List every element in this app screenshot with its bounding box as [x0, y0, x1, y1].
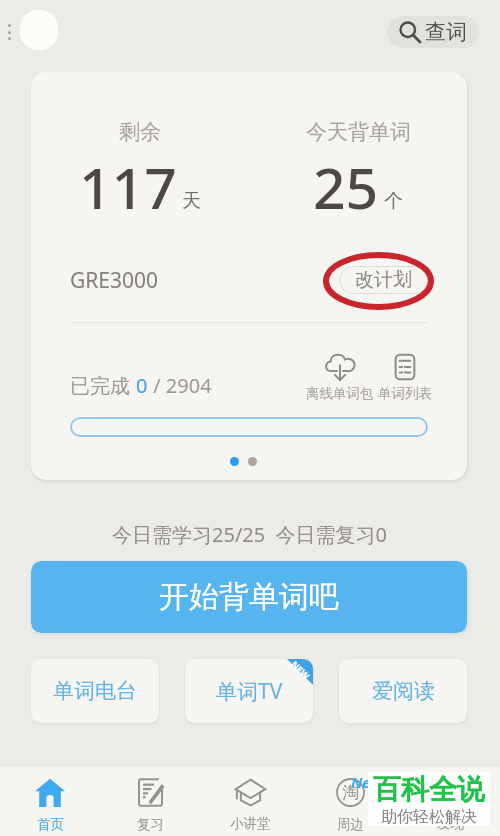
button[interactable]: 单词列表 — [371, 353, 439, 402]
button[interactable]: 单词TV — [185, 659, 313, 723]
button[interactable]: 离线单词包 — [306, 353, 374, 402]
button[interactable]: 小讲堂 — [200, 766, 300, 836]
staticText: / 2904 — [148, 372, 212, 399]
staticText: 已完成 — [70, 372, 136, 399]
staticText: 今日需学习25/25 今日需复习0 — [112, 521, 388, 548]
staticText: 助你轻松解决 — [381, 807, 477, 826]
staticText: 改计划 — [355, 268, 412, 292]
button[interactable]: 改计划 — [339, 266, 428, 294]
staticText: 25 — [313, 148, 379, 226]
button[interactable]: 发现 — [400, 766, 500, 836]
staticText: 天 — [182, 189, 201, 213]
staticText: 淘 — [342, 782, 359, 803]
staticText: 离线单词包 — [306, 385, 374, 402]
staticText: 周边 — [337, 816, 364, 833]
staticText: GRE3000 — [70, 266, 159, 295]
staticText: 单词列表 — [378, 385, 432, 402]
staticText: 0 — [136, 372, 148, 399]
staticText: 首页 — [37, 816, 64, 833]
staticText: 剩余 — [119, 119, 161, 145]
button[interactable]: 查词 — [387, 16, 479, 48]
staticText: New — [351, 772, 383, 792]
staticText: 单词电台 — [53, 678, 137, 704]
staticText: 开始背单词吧 — [159, 578, 339, 616]
staticText: 查词 — [425, 19, 467, 45]
staticText: 个 — [384, 189, 403, 213]
staticText: 单词TV — [216, 677, 283, 706]
button[interactable]: 爱阅读 — [339, 659, 467, 723]
staticText: 发现 — [437, 815, 464, 832]
button[interactable]: 开始背单词吧 — [31, 561, 467, 633]
button[interactable]: 首页 — [0, 766, 100, 836]
staticText: 117 — [79, 148, 177, 226]
staticText: NEW — [289, 659, 313, 682]
staticText: 小讲堂 — [230, 815, 271, 832]
button[interactable]: More options — [5, 24, 14, 40]
button[interactable]: 淘 — [300, 766, 400, 836]
button[interactable]: Profile — [20, 10, 58, 50]
button[interactable]: 复习 — [100, 766, 200, 836]
staticText: 百科全说 — [373, 772, 485, 807]
button[interactable]: 单词电台 — [31, 659, 159, 723]
staticText: 爱阅读 — [372, 678, 435, 704]
staticText: 复习 — [137, 816, 164, 833]
staticText: 今天背单词 — [306, 119, 411, 145]
